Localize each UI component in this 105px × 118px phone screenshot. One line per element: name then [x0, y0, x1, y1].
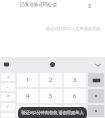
staticText: - — [7, 84, 9, 90]
button[interactable]: Backspace — [88, 73, 104, 87]
staticText: 1 — [26, 76, 30, 84]
staticText: 3 — [73, 76, 77, 84]
button[interactable]: / — [1, 103, 15, 111]
button[interactable]: Emoji — [48, 60, 57, 69]
button[interactable]: * — [1, 93, 15, 101]
staticText: 3 — [88, 2, 91, 9]
staticText: 7 — [26, 107, 30, 115]
staticText: 4 — [26, 92, 30, 100]
staticText: 5 — [49, 92, 53, 100]
staticText: 2 — [49, 76, 53, 84]
button[interactable]: 2 — [40, 73, 62, 87]
staticText: + — [7, 74, 10, 80]
button[interactable]: 4 — [17, 89, 38, 103]
staticText: 已发送验证码短信 — [20, 2, 57, 8]
button[interactable]: Switch keyboard — [2, 60, 11, 69]
button[interactable]: 6 — [64, 89, 86, 103]
staticText: / — [7, 104, 9, 110]
button[interactable]: 3 — [64, 73, 86, 87]
button[interactable]: Hide keyboard — [93, 60, 102, 69]
button[interactable]: Symbols — [88, 89, 104, 103]
button[interactable]: Send — [88, 105, 104, 117]
button[interactable]: 8 — [40, 105, 62, 117]
button[interactable]: 5 — [40, 89, 62, 103]
button[interactable]: 1 — [17, 73, 38, 87]
staticText: 验证码2分钟内有效,请勿泄露他人 — [21, 110, 84, 116]
button[interactable]: + — [1, 73, 15, 81]
button[interactable]: - — [1, 83, 15, 91]
staticText: 8 — [49, 107, 53, 115]
staticText: 6 — [73, 92, 77, 100]
staticText: * — [7, 94, 10, 100]
button[interactable]: 9 — [64, 105, 86, 117]
button[interactable]: 7 — [17, 105, 38, 117]
staticText: 验证码仅限本人使用请勿泄露 — [46, 26, 101, 31]
staticText: 9 — [73, 107, 77, 115]
